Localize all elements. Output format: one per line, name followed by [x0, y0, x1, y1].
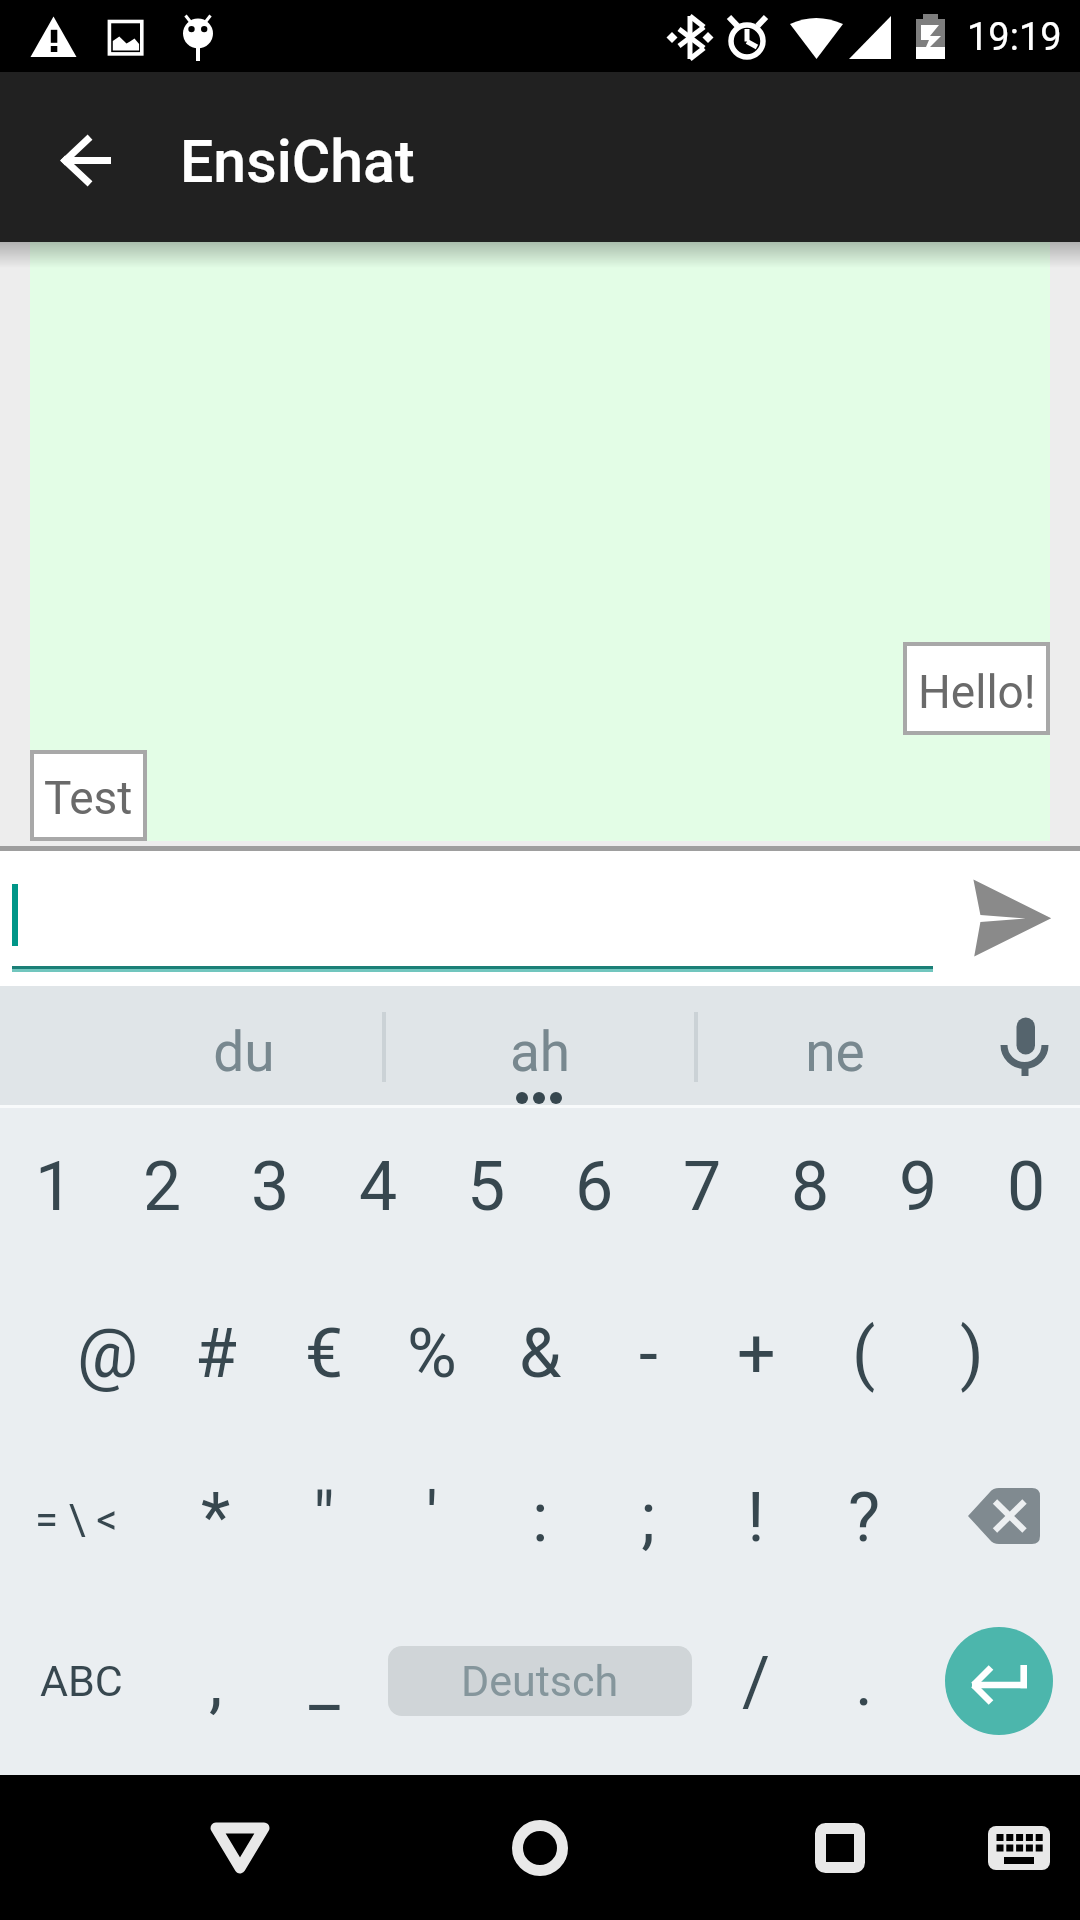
button[interactable]: ABC	[27, 1624, 135, 1738]
button[interactable]: Home	[490, 1800, 590, 1896]
button[interactable]: ,	[162, 1625, 270, 1739]
button[interactable]: 0	[972, 1130, 1080, 1244]
staticText: EnsiChat	[180, 127, 415, 196]
staticText: .	[855, 1642, 873, 1722]
button[interactable]: )	[918, 1297, 1026, 1411]
staticText: €	[305, 1314, 344, 1394]
staticText: 4	[359, 1147, 398, 1227]
staticText: "	[313, 1478, 335, 1558]
button[interactable]: #	[162, 1297, 270, 1411]
staticText: #	[195, 1314, 237, 1394]
button[interactable]: 5	[432, 1130, 540, 1244]
staticText: 5	[467, 1147, 506, 1227]
staticText: 0	[1007, 1147, 1046, 1227]
button[interactable]: ne	[745, 1020, 925, 1084]
button[interactable]: Back	[190, 1800, 290, 1896]
staticText: 8	[791, 1147, 830, 1227]
staticText: ,	[209, 1642, 223, 1722]
staticText: _	[309, 1642, 340, 1722]
staticText: 3	[251, 1147, 290, 1227]
button[interactable]: Hello!	[903, 642, 1050, 735]
staticText: (	[852, 1314, 876, 1394]
button[interactable]: Deutsch	[388, 1646, 692, 1716]
button[interactable]: %	[378, 1297, 486, 1411]
staticText: !	[747, 1478, 765, 1558]
button[interactable]: Recent apps	[790, 1800, 890, 1896]
button[interactable]: Send	[945, 855, 1075, 981]
staticText: ?	[848, 1478, 881, 1558]
button[interactable]: +	[702, 1297, 810, 1411]
staticText: 19:19	[967, 15, 1062, 60]
button[interactable]: 9	[864, 1130, 972, 1244]
staticText: 6	[575, 1147, 614, 1227]
button[interactable]: Voice input	[980, 1000, 1070, 1100]
button[interactable]: *	[162, 1461, 270, 1575]
button[interactable]: .	[810, 1625, 918, 1739]
button[interactable]: 4	[324, 1130, 432, 1244]
staticText: Hello!	[918, 665, 1036, 719]
staticText: /	[742, 1642, 771, 1722]
button[interactable]: Navigate up	[38, 112, 134, 208]
staticText: %	[407, 1314, 457, 1394]
staticText: *	[201, 1478, 231, 1558]
button[interactable]: :	[486, 1461, 594, 1575]
staticText: Test	[44, 771, 133, 825]
button[interactable]: /	[702, 1625, 810, 1739]
staticText: 1	[35, 1147, 74, 1227]
button[interactable]: ;	[594, 1461, 702, 1575]
button[interactable]: (	[810, 1297, 918, 1411]
staticText: )	[960, 1314, 984, 1394]
staticText: ah	[450, 1020, 630, 1084]
button[interactable]: ah	[450, 1020, 630, 1084]
button[interactable]: = \ <	[22, 1462, 130, 1576]
button[interactable]: 2	[108, 1130, 216, 1244]
button[interactable]: &	[486, 1297, 594, 1411]
button[interactable]: 8	[756, 1130, 864, 1244]
button[interactable]: Test	[30, 750, 147, 841]
button[interactable]: 3	[216, 1130, 324, 1244]
staticText: 9	[899, 1147, 938, 1227]
button[interactable]: @	[54, 1297, 162, 1411]
button[interactable]: €	[270, 1297, 378, 1411]
button[interactable]: Change keyboard	[969, 1800, 1069, 1896]
staticText: 2	[143, 1147, 182, 1227]
button[interactable]: Backspace	[950, 1460, 1058, 1575]
button[interactable]: 6	[540, 1130, 648, 1244]
staticText: &	[519, 1314, 562, 1394]
button[interactable]: du	[154, 1020, 334, 1084]
staticText: = \ <	[35, 1495, 118, 1544]
button[interactable]: ?	[810, 1461, 918, 1575]
button[interactable]: 1	[0, 1130, 108, 1244]
button[interactable]: 7	[648, 1130, 756, 1244]
staticText: Deutsch	[461, 1656, 619, 1706]
button[interactable]: _	[270, 1625, 378, 1739]
staticText: -	[639, 1314, 658, 1394]
staticText: @	[77, 1314, 139, 1394]
staticText: ;	[641, 1478, 656, 1558]
staticText: +	[737, 1314, 776, 1394]
staticText: '	[426, 1478, 438, 1558]
staticText: 7	[683, 1147, 722, 1227]
staticText: :	[532, 1478, 549, 1558]
button[interactable]: "	[270, 1461, 378, 1575]
staticText: du	[154, 1020, 334, 1084]
staticText: ABC	[40, 1656, 123, 1706]
button[interactable]: Enter	[945, 1627, 1053, 1735]
button[interactable]: '	[378, 1461, 486, 1575]
button[interactable]: !	[702, 1461, 810, 1575]
staticText: ne	[745, 1020, 925, 1084]
button[interactable]: -	[594, 1297, 702, 1411]
